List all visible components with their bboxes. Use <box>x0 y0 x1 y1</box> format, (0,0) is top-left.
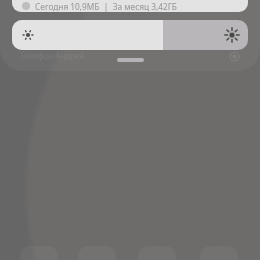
button[interactable]: Сегодня 10,9МБ | За месяц 3,42ГБ <box>12 0 248 12</box>
staticText: Сегодня 10,9МБ | За месяц 3,42ГБ <box>35 1 177 12</box>
button[interactable]: Settings <box>229 51 240 62</box>
button[interactable]: Brightness <box>12 20 248 50</box>
staticText: Телефон Андрей <box>20 50 85 61</box>
button[interactable]: App 1 <box>20 246 58 260</box>
button[interactable]: Expand quick settings <box>117 58 144 62</box>
